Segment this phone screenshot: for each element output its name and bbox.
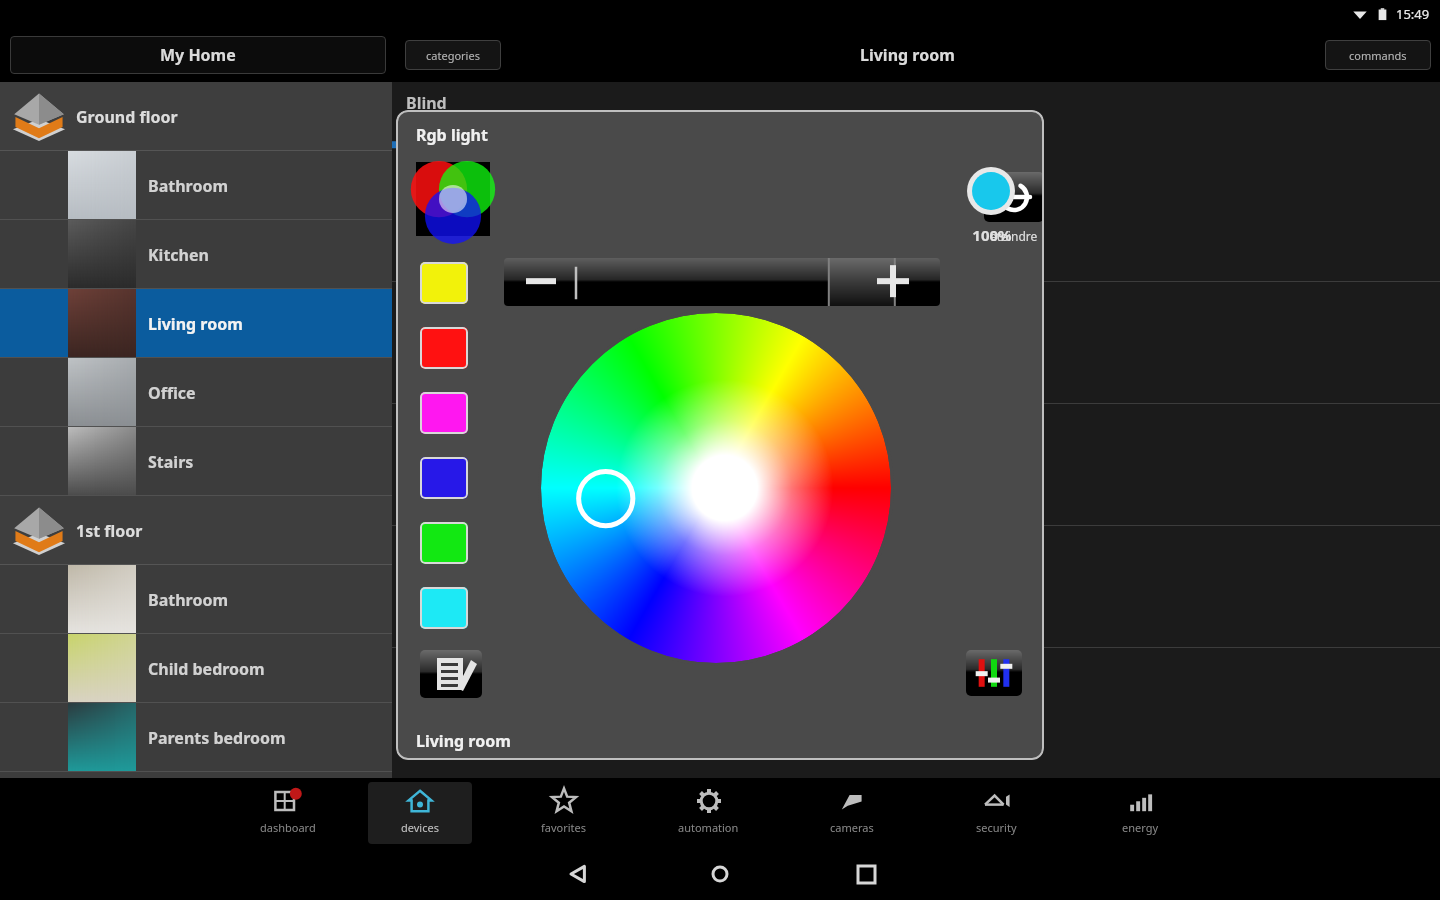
button[interactable]: Brightness (967, 167, 1015, 215)
staticText: Living room (148, 313, 243, 335)
button[interactable]: Stairs (0, 427, 392, 496)
staticText: Ground floor (76, 106, 178, 128)
staticText: Bathroom (148, 175, 229, 197)
staticText: commands (1349, 48, 1407, 63)
staticText: 15:49 (1396, 5, 1430, 23)
button[interactable]: Preset colour (420, 392, 468, 434)
button[interactable]: commands (1325, 40, 1431, 70)
button[interactable]: RGB sliders (966, 650, 1022, 696)
button[interactable]: security (944, 782, 1048, 844)
button[interactable]: 1st floor (0, 496, 392, 565)
staticText: cameras (830, 820, 874, 835)
staticText: Stairs (148, 451, 194, 473)
button[interactable]: Preset colour (420, 457, 468, 499)
staticText: Rgb light (416, 124, 488, 146)
button[interactable]: Colour wheel (541, 313, 891, 663)
staticText: categories (426, 48, 480, 63)
staticText: Bathroom (148, 589, 229, 611)
button[interactable]: Ground floor (0, 82, 392, 151)
staticText: Child bedroom (148, 658, 265, 680)
button[interactable]: Brightness slider (504, 258, 940, 306)
button[interactable]: Office (0, 358, 392, 427)
button[interactable]: automation (656, 782, 760, 844)
staticText: 100% (956, 225, 1028, 245)
button[interactable]: Bathroom (0, 151, 392, 220)
button[interactable]: Edit scene (420, 650, 482, 698)
staticText: éteindre (990, 228, 1038, 244)
button[interactable]: dashboard (236, 782, 340, 844)
button[interactable]: Blind position (488, 144, 524, 178)
staticText: energy (1122, 820, 1159, 835)
staticText: dashboard (260, 820, 316, 835)
button[interactable]: Kitchen (0, 220, 392, 289)
button[interactable]: Preset colour (420, 327, 468, 369)
staticText: Living room (860, 44, 955, 66)
staticText: Parents bedroom (148, 727, 286, 749)
button[interactable]: cameras (800, 782, 904, 844)
button[interactable]: Child bedroom (0, 634, 392, 703)
staticText: Blind (406, 92, 447, 114)
button[interactable]: devices (368, 782, 472, 844)
button[interactable]: Living room (0, 289, 392, 358)
staticText: security (976, 820, 1017, 835)
button[interactable]: energy (1088, 782, 1192, 844)
button[interactable]: Preset colour (420, 587, 468, 629)
button[interactable]: Parents bedroom (0, 703, 392, 772)
button[interactable]: Bathroom (0, 565, 392, 634)
button[interactable]: Preset colour (420, 522, 468, 564)
button[interactable]: Current colour (416, 162, 490, 236)
button[interactable]: éteindre (984, 172, 1044, 222)
staticText: favorites (541, 820, 587, 835)
staticText: Office (148, 382, 196, 404)
button[interactable]: favorites (512, 782, 616, 844)
staticText: automation (678, 820, 739, 835)
staticText: devices (401, 820, 439, 835)
button[interactable]: Back (556, 848, 600, 900)
button[interactable]: My Home (10, 36, 386, 74)
button[interactable]: Home (698, 848, 742, 900)
button[interactable]: Preset colour (420, 262, 468, 304)
staticText: Living room (416, 730, 511, 752)
staticText: My Home (160, 44, 236, 66)
staticText: Kitchen (148, 244, 209, 266)
staticText: 1st floor (76, 520, 143, 542)
button[interactable]: Recents (844, 848, 888, 900)
button[interactable]: categories (405, 40, 501, 70)
